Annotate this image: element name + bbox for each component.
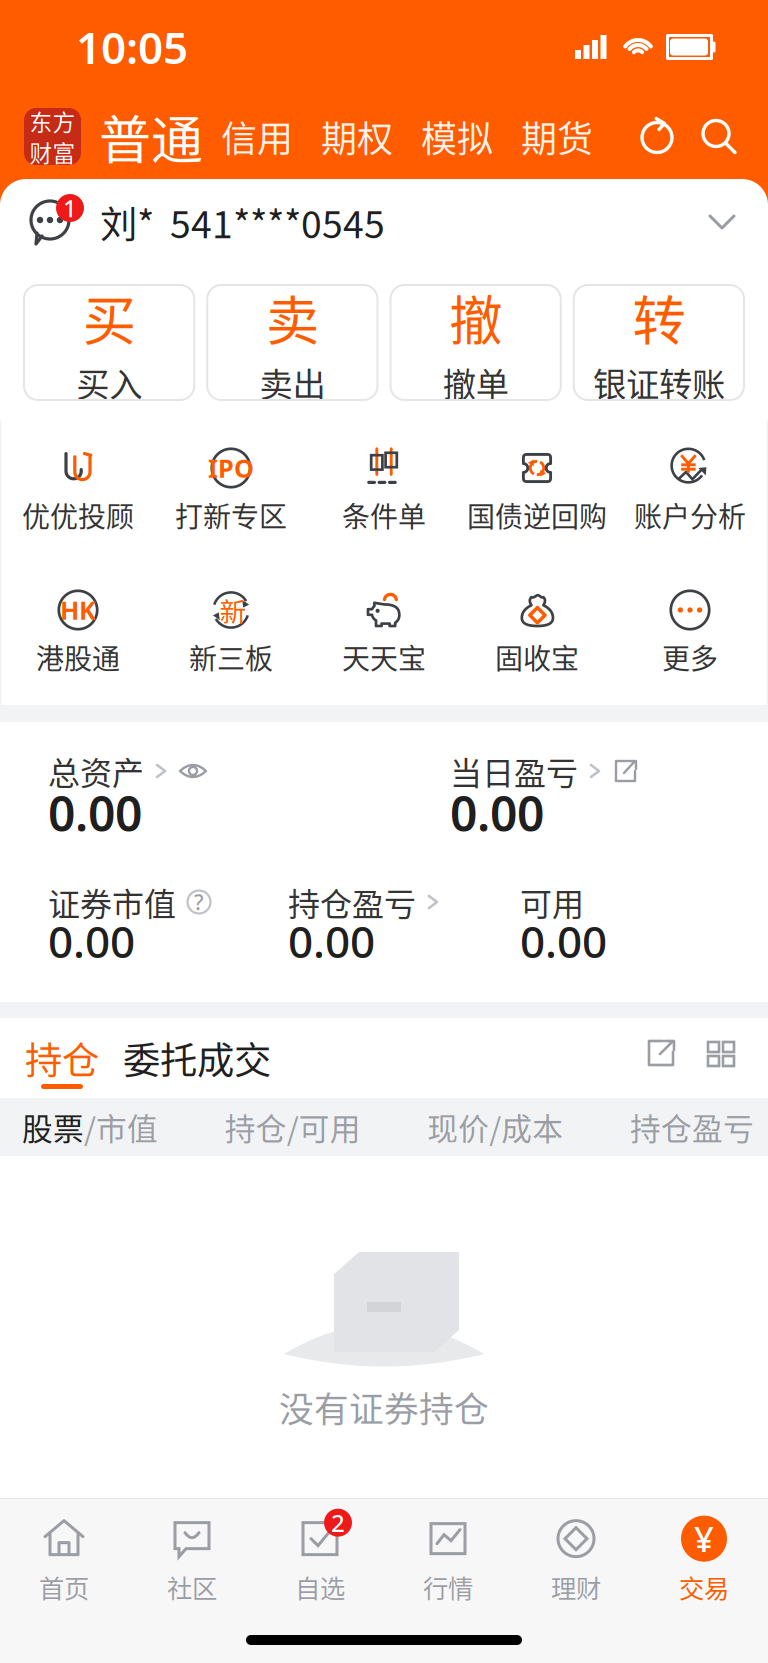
button[interactable]: HK: [1, 586, 154, 680]
button[interactable]: 新: [154, 586, 307, 680]
staticText: 卖出: [259, 358, 325, 406]
staticText: ?: [194, 888, 204, 916]
button[interactable]: 更多视图: [678, 1036, 738, 1070]
button[interactable]: 1: [0, 179, 768, 265]
staticText: 期货: [521, 110, 593, 162]
button[interactable]: 首页: [0, 1515, 128, 1605]
staticText: 0.00: [520, 912, 607, 970]
staticText: 持仓盈亏: [630, 1105, 754, 1149]
staticText: 0.00: [450, 781, 544, 845]
staticText: 自选: [295, 1569, 345, 1605]
staticText: 持仓: [25, 1031, 99, 1085]
staticText: 港股通: [36, 637, 120, 677]
staticText: 转: [632, 279, 685, 356]
staticText: /市值: [84, 1105, 158, 1149]
button[interactable]: 卖: [207, 285, 377, 400]
button[interactable]: 搜索: [688, 105, 750, 167]
button[interactable]: 天天宝: [307, 586, 460, 680]
button[interactable]: 理财: [512, 1515, 640, 1605]
staticText: 条件单: [342, 495, 426, 535]
button[interactable]: 买: [24, 285, 194, 400]
staticText: 首页: [39, 1569, 89, 1605]
staticText: 1: [63, 192, 77, 224]
button[interactable]: 行情: [384, 1515, 512, 1605]
button[interactable]: 账户分析: [613, 444, 766, 538]
staticText: 0.00: [48, 781, 142, 845]
button[interactable]: 总资产: [48, 752, 450, 836]
button[interactable]: 持仓: [24, 1036, 100, 1089]
staticText: 普通: [99, 99, 203, 174]
staticText: HK: [60, 593, 96, 627]
button[interactable]: ¥: [640, 1515, 768, 1605]
button[interactable]: 优优投顾: [1, 444, 154, 538]
staticText: 天天宝: [342, 637, 426, 677]
staticText: 期权: [321, 110, 393, 162]
staticText: 没有证券持仓: [279, 1382, 489, 1432]
staticText: 证券市值: [48, 879, 176, 925]
button[interactable]: 信用: [207, 110, 307, 162]
button[interactable]: 当日盈亏: [450, 752, 710, 836]
staticText: 账户分析: [634, 495, 746, 535]
staticText: 撤单: [443, 358, 509, 406]
staticText: 信用: [221, 110, 293, 162]
button[interactable]: 社区: [128, 1515, 256, 1605]
staticText: 财富: [29, 135, 75, 168]
button[interactable]: 更多: [613, 586, 766, 680]
button[interactable]: 转: [574, 285, 744, 400]
button[interactable]: 期权: [307, 110, 407, 162]
button[interactable]: 普通: [81, 99, 207, 174]
staticText: 当日盈亏: [450, 748, 578, 794]
staticText: 新: [219, 591, 246, 629]
staticText: 卖: [266, 279, 319, 356]
staticText: 买: [83, 279, 136, 356]
button[interactable]: 刷新: [626, 105, 688, 167]
button[interactable]: 委托成交: [100, 1036, 272, 1080]
staticText: 理财: [551, 1569, 601, 1605]
staticText: 0.00: [48, 912, 135, 970]
staticText: 打新专区: [175, 495, 287, 535]
staticText: 0.00: [288, 912, 375, 970]
staticText: 可用: [520, 879, 584, 925]
staticText: 交易: [679, 1569, 729, 1605]
staticText: 社区: [167, 1569, 217, 1605]
staticText: ¥: [694, 1516, 714, 1562]
staticText: 买入: [76, 358, 142, 406]
staticText: 行情: [423, 1569, 473, 1605]
button[interactable]: 条件单: [307, 444, 460, 538]
staticText: 银证转账: [593, 358, 725, 406]
button[interactable]: IPO: [154, 444, 307, 538]
button[interactable]: 东方财富: [24, 108, 81, 165]
button[interactable]: 证券市值: [48, 884, 288, 962]
button[interactable]: 模拟: [407, 110, 507, 162]
staticText: 委托成交: [123, 1031, 271, 1085]
button[interactable]: 分享: [644, 1036, 678, 1070]
button[interactable]: 2: [256, 1515, 384, 1605]
staticText: 东方: [29, 105, 75, 137]
staticText: 更多: [662, 637, 718, 677]
staticText: 刘* 541****0545: [100, 195, 385, 249]
staticText: 国债逆回购: [467, 495, 607, 535]
staticText: 持仓/可用: [225, 1105, 361, 1149]
button[interactable]: 国债逆回购: [460, 444, 613, 538]
staticText: 2: [331, 1507, 345, 1539]
staticText: 撤: [449, 279, 502, 356]
staticText: IPO: [208, 451, 254, 485]
staticText: 模拟: [421, 110, 493, 162]
button[interactable]: 固收宝: [460, 586, 613, 680]
staticText: 固收宝: [495, 637, 579, 677]
button[interactable]: 期货: [507, 110, 607, 162]
button[interactable]: 撤: [390, 285, 561, 400]
staticText: 优优投顾: [22, 495, 134, 535]
staticText: 持仓盈亏: [288, 879, 416, 925]
staticText: 现价/成本: [427, 1105, 563, 1149]
staticText: 新三板: [189, 637, 273, 677]
staticText: 股票: [22, 1105, 84, 1149]
button[interactable]: 持仓盈亏: [288, 884, 520, 962]
staticText: 10:05: [76, 18, 188, 76]
staticText: 总资产: [48, 748, 144, 794]
